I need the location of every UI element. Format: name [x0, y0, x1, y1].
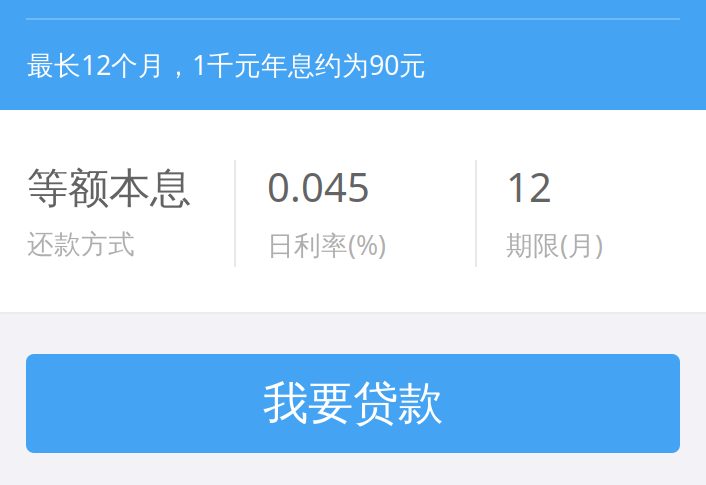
staticText: 日利率(%): [267, 227, 386, 262]
button[interactable]: 我要贷款: [26, 354, 680, 453]
staticText: 我要贷款: [263, 376, 443, 431]
staticText: 12: [506, 160, 552, 213]
staticText: 期限(月): [506, 227, 603, 262]
staticText: 0.045: [267, 160, 370, 213]
staticText: 最长12个月，1千元年息约为90元: [27, 47, 426, 82]
staticText: 还款方式: [27, 228, 135, 261]
staticText: 等额本息: [27, 163, 191, 214]
